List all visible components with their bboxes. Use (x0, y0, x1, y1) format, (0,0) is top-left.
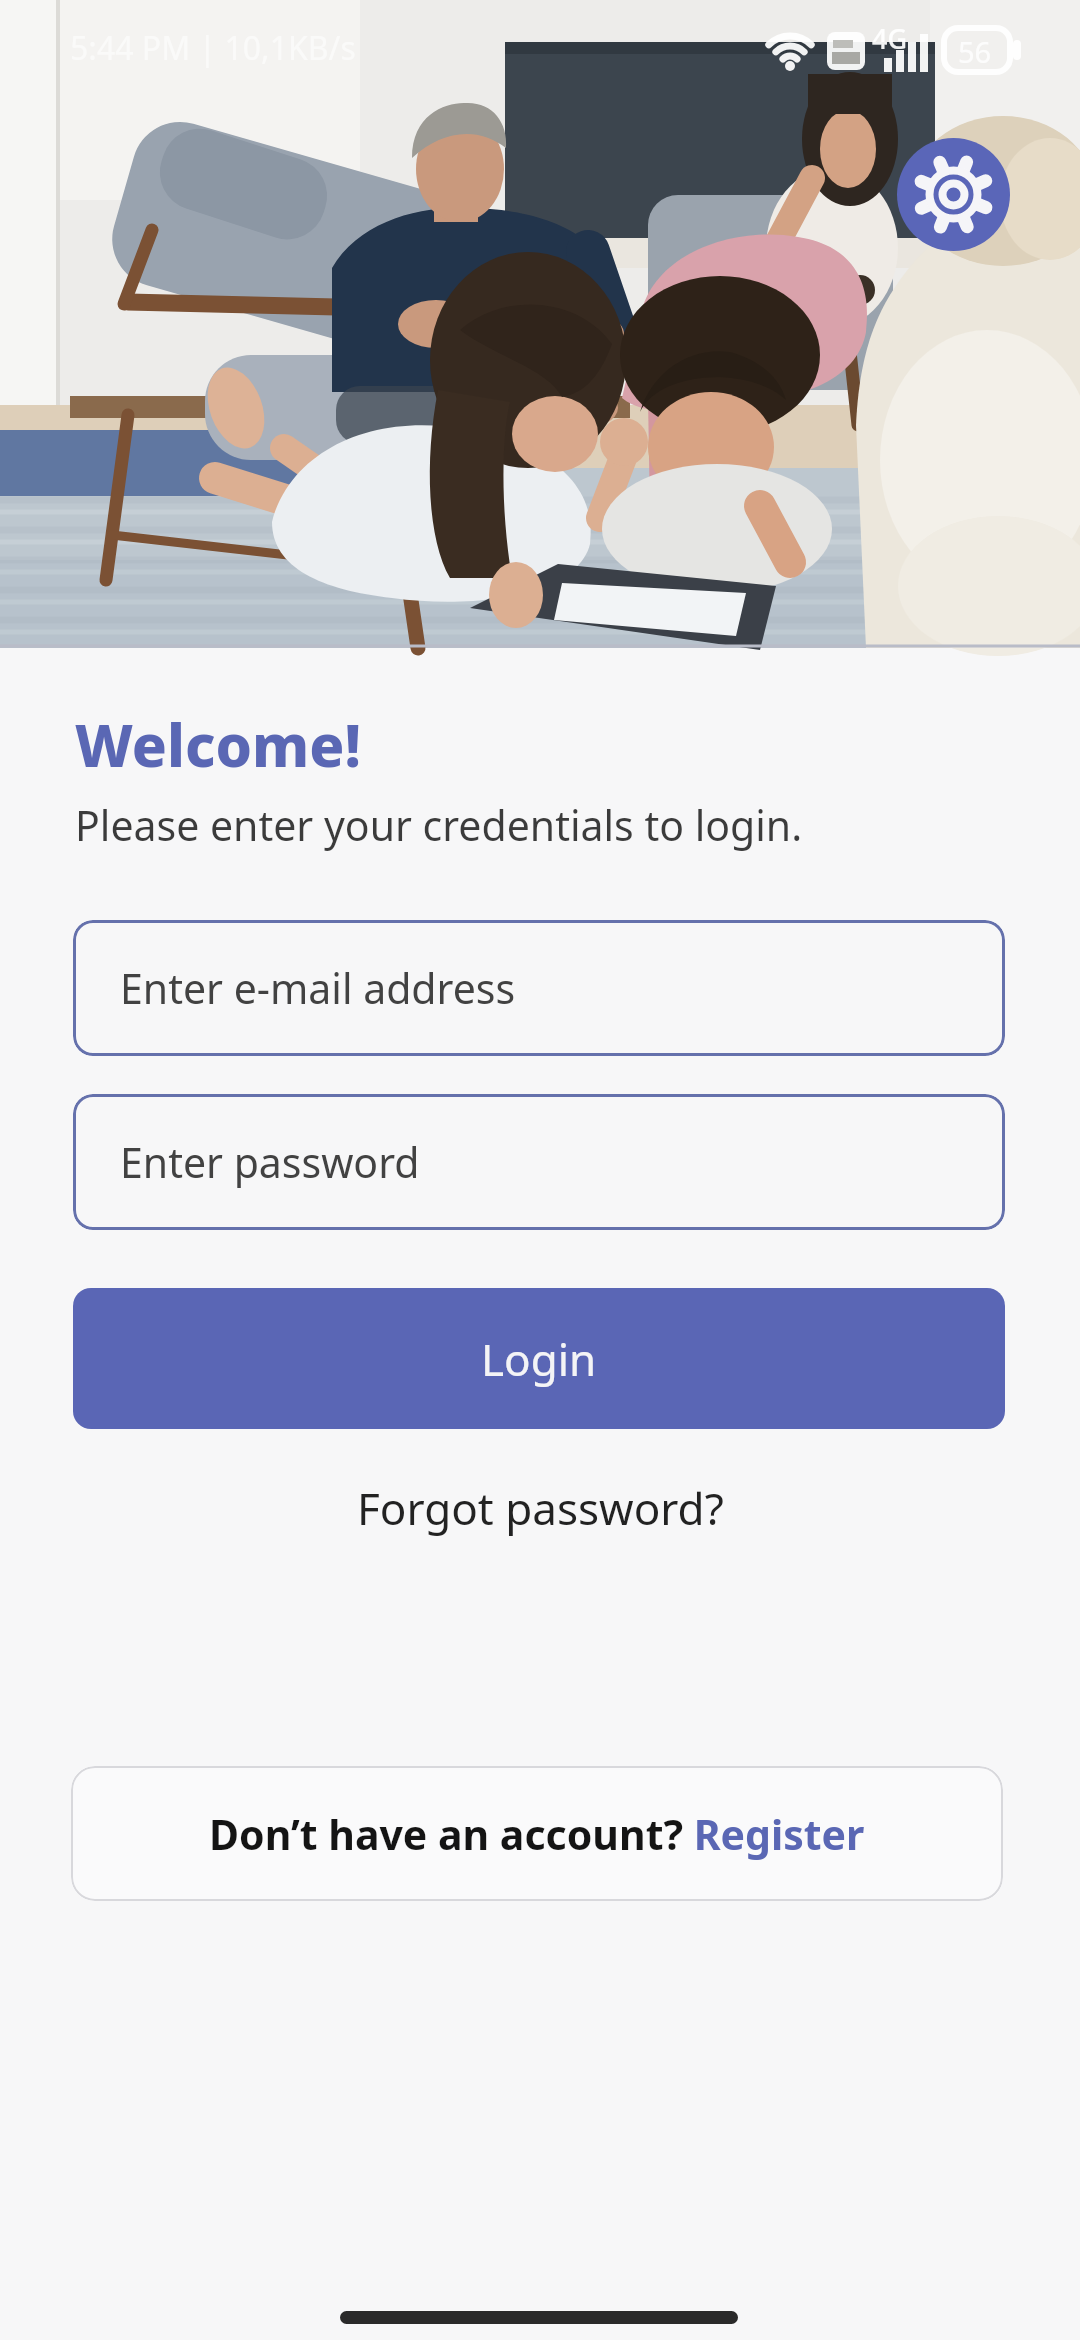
staticText: 4G (872, 20, 908, 57)
button[interactable]: Enter password (73, 1094, 1005, 1230)
staticText: 56 (958, 32, 992, 71)
staticText: Forgot password? (357, 1478, 724, 1538)
staticText: Enter password (120, 1134, 420, 1190)
staticText: Login (481, 1329, 597, 1389)
button[interactable]: Forgot password? (0, 1478, 1080, 1538)
button[interactable] (897, 138, 1010, 251)
button[interactable]: Login (73, 1288, 1005, 1429)
staticText: Don’t have an account? Register (209, 1806, 865, 1862)
button[interactable]: Enter e-mail address (73, 920, 1005, 1056)
staticText: Enter e-mail address (120, 960, 516, 1016)
staticText: Please enter your credentials to login. (75, 797, 803, 853)
button[interactable]: Don’t have an account? Register (71, 1766, 1003, 1901)
staticText: Welcome! (75, 705, 362, 784)
